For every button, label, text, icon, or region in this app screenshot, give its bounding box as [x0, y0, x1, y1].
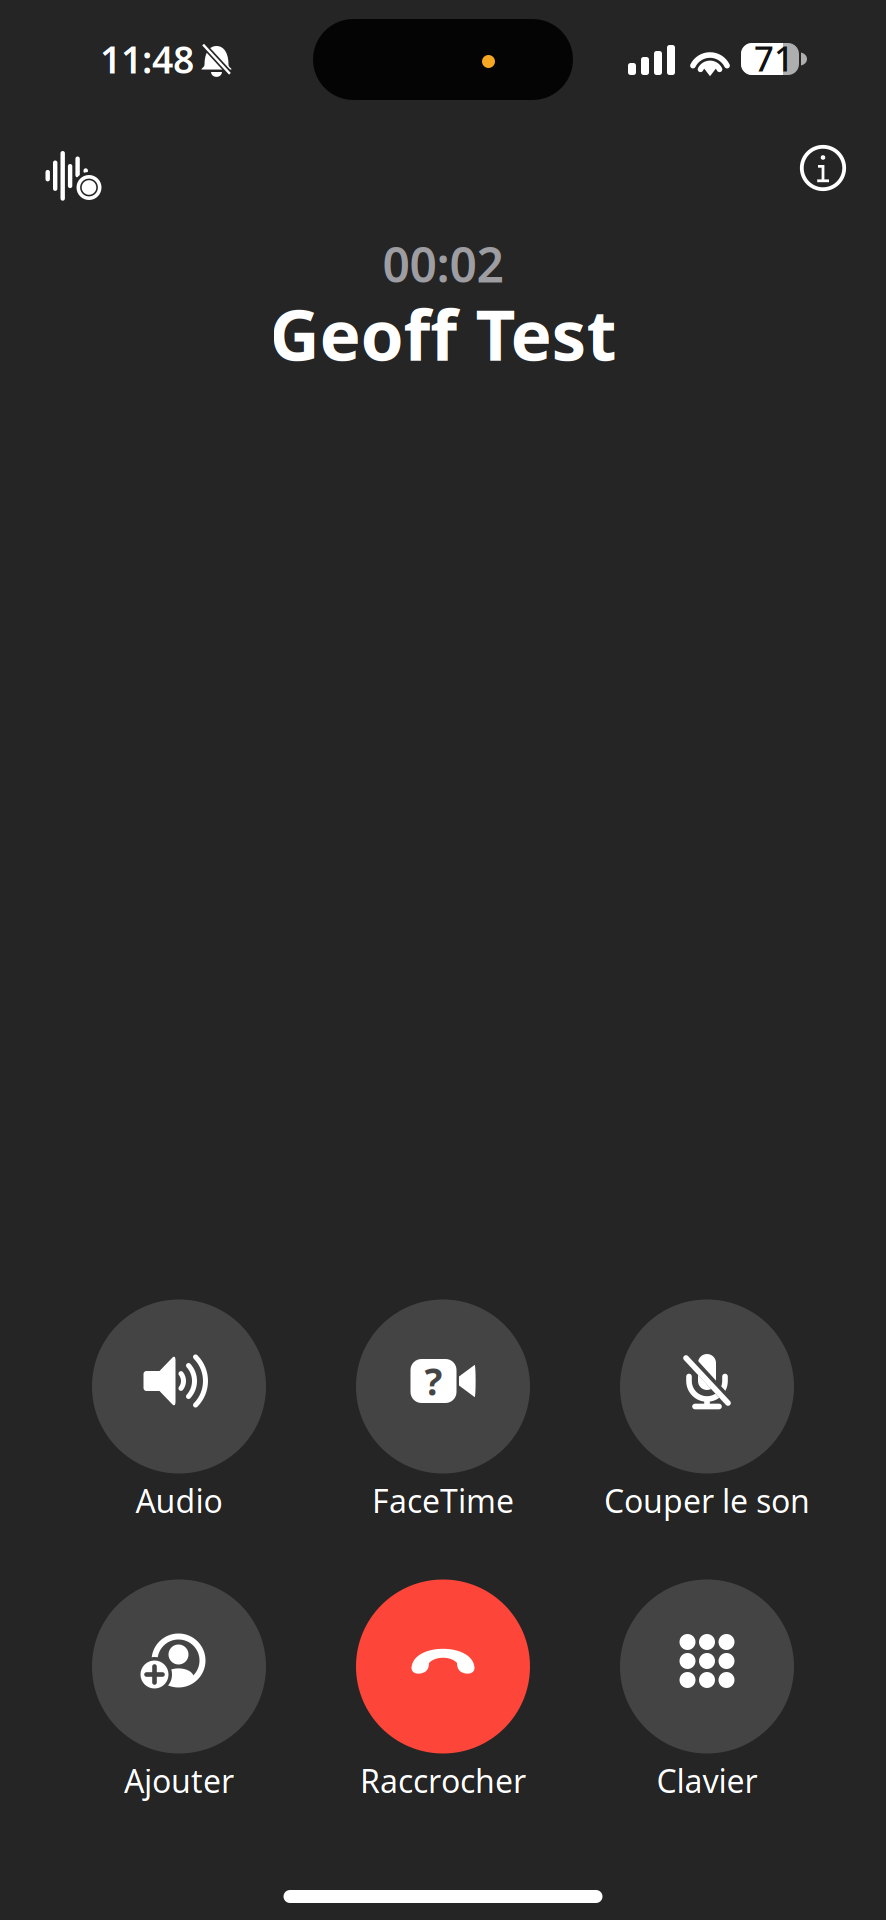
button[interactable]: Raccrocher	[311, 1575, 575, 1805]
button[interactable]: Ajouter	[47, 1575, 311, 1805]
staticText: FaceTime	[372, 1479, 514, 1522]
staticText: Couper le son	[604, 1479, 810, 1522]
staticText: 00:02	[382, 232, 503, 296]
staticText: Ajouter	[124, 1759, 234, 1802]
button[interactable]: Audio	[47, 1295, 311, 1525]
button[interactable]: Call info	[768, 130, 854, 216]
staticText: Clavier	[656, 1759, 757, 1802]
staticText: 71	[754, 35, 794, 81]
button[interactable]: Call recording	[32, 130, 118, 216]
staticText: Raccrocher	[360, 1759, 526, 1802]
staticText: ?	[424, 1356, 442, 1406]
staticText: Audio	[135, 1479, 222, 1522]
button[interactable]: Clavier	[575, 1575, 839, 1805]
button[interactable]: Couper le son	[575, 1295, 839, 1525]
button[interactable]: ?	[311, 1295, 575, 1525]
staticText: 11:48	[100, 34, 194, 84]
staticText: Geoff Test	[269, 288, 616, 380]
